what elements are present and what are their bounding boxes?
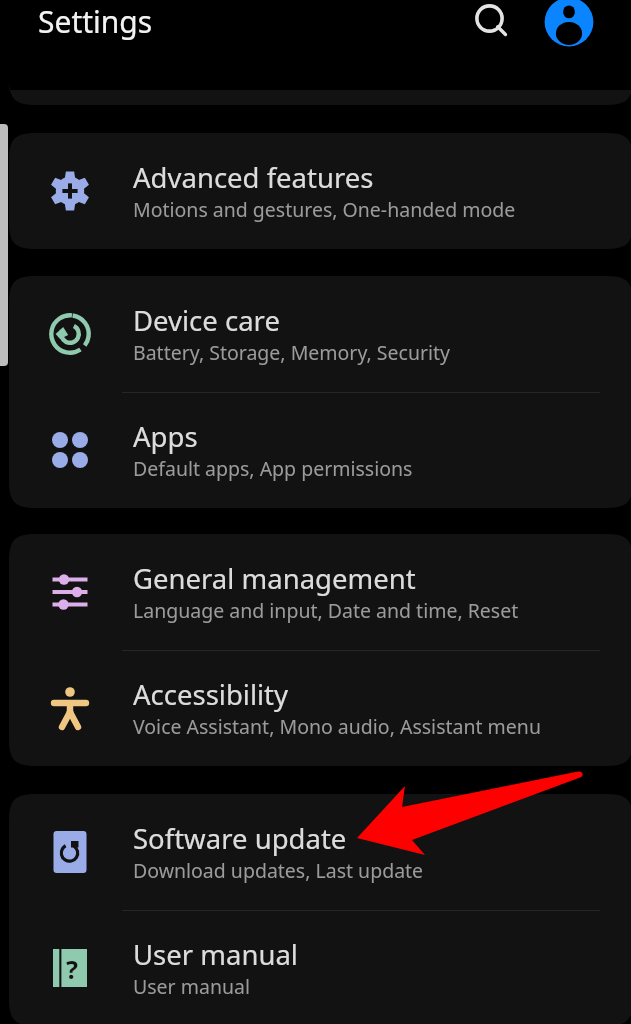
button[interactable]: Advanced features — [9, 133, 631, 249]
staticText: Default apps, App permissions — [133, 455, 413, 482]
staticText: Battery, Storage, Memory, Security — [133, 339, 451, 366]
staticText: Motions and gestures, One-handed mode — [133, 196, 516, 223]
staticText: Advanced features — [133, 159, 374, 196]
button[interactable]: Device care — [9, 276, 631, 392]
staticText: ? — [66, 952, 78, 986]
staticText: General management — [133, 560, 416, 597]
staticText: Apps — [133, 418, 198, 455]
staticText: Accessibility — [133, 676, 289, 713]
staticText: User manual — [133, 936, 298, 973]
button[interactable]: Profile — [544, 0, 594, 47]
button[interactable]: General management — [9, 534, 631, 650]
staticText: Download updates, Last update — [133, 857, 424, 884]
staticText: Device care — [133, 302, 280, 339]
button[interactable]: Software update — [9, 794, 631, 910]
staticText: Voice Assistant, Mono audio, Assistant m… — [133, 713, 541, 740]
button[interactable]: ? — [9, 910, 631, 1024]
button[interactable]: Search — [467, 0, 515, 44]
button[interactable]: Accessibility — [9, 650, 631, 766]
staticText: Software update — [133, 820, 347, 857]
staticText: User manual — [133, 973, 250, 1000]
staticText: Language and input, Date and time, Reset — [133, 597, 519, 624]
button[interactable]: Apps — [9, 392, 631, 508]
staticText: Settings — [38, 1, 153, 42]
